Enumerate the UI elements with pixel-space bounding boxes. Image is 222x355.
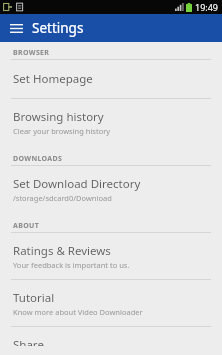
staticText: DOWNLOADS xyxy=(13,154,63,164)
staticText: Ratings & Reviews xyxy=(13,243,111,259)
staticText: Set Download Directory xyxy=(13,176,141,192)
button[interactable]: Share xyxy=(0,327,222,355)
staticText: Browsing history xyxy=(13,109,104,125)
staticText: ABOUT xyxy=(13,221,40,231)
staticText: Share xyxy=(13,337,44,346)
button[interactable]: Set Download Directory xyxy=(0,166,222,212)
button[interactable]: Set Homepage xyxy=(0,60,222,98)
staticText: Settings xyxy=(32,19,84,37)
staticText: Know more about Video Downloader xyxy=(13,307,143,317)
staticText: Tutorial xyxy=(13,290,55,306)
staticText: 19:49 xyxy=(195,1,219,13)
staticText: BROWSER xyxy=(13,48,50,58)
button[interactable]: Browsing history xyxy=(0,99,222,145)
staticText: Clear your browsing history xyxy=(13,126,111,136)
staticText: Your feedback is important to us. xyxy=(13,260,130,270)
button[interactable]: Open navigation drawer xyxy=(0,14,32,42)
staticText: Set Homepage xyxy=(13,71,93,87)
button[interactable]: Tutorial xyxy=(0,280,222,326)
staticText: /storage/sdcard0/Download xyxy=(13,193,112,203)
button[interactable]: Ratings & Reviews xyxy=(0,233,222,279)
